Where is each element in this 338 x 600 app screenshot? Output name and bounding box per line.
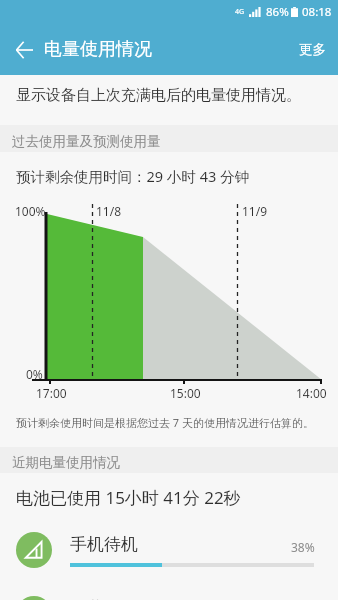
staticText: 08:18: [302, 4, 332, 20]
staticText: 过去使用量及预测使用量: [12, 133, 161, 150]
button[interactable]: Back: [6, 32, 42, 68]
staticText: 11/9: [242, 203, 268, 219]
staticText: 更多: [299, 41, 326, 58]
staticText: 100%: [15, 203, 46, 219]
staticText: 17:00: [36, 385, 67, 401]
staticText: 86%: [266, 4, 289, 20]
staticText: 4G: [235, 7, 245, 17]
staticText: 手机待机: [70, 534, 138, 555]
staticText: 预计剩余使用时间是根据您过去 7 天的使用情况进行估算的。: [16, 415, 315, 430]
button[interactable]: 更多: [287, 33, 338, 66]
staticText: 38%: [291, 539, 315, 555]
button[interactable]: 屏幕: [0, 584, 338, 600]
staticText: 11/8: [96, 203, 122, 219]
staticText: 电量使用情况: [44, 38, 152, 61]
staticText: 15:00: [170, 385, 201, 401]
staticText: 14:00: [296, 385, 327, 401]
staticText: 近期电量使用情况: [12, 454, 120, 471]
staticText: 屏幕: [70, 598, 104, 600]
staticText: 0%: [26, 366, 43, 382]
staticText: 预计剩余使用时间：29 小时 43 分钟: [16, 166, 249, 186]
staticText: 显示设备自上次充满电后的电量使用情况。: [16, 86, 301, 105]
staticText: 电池已使用 15小时 41分 22秒: [16, 486, 241, 509]
button[interactable]: 手机待机: [0, 520, 338, 584]
